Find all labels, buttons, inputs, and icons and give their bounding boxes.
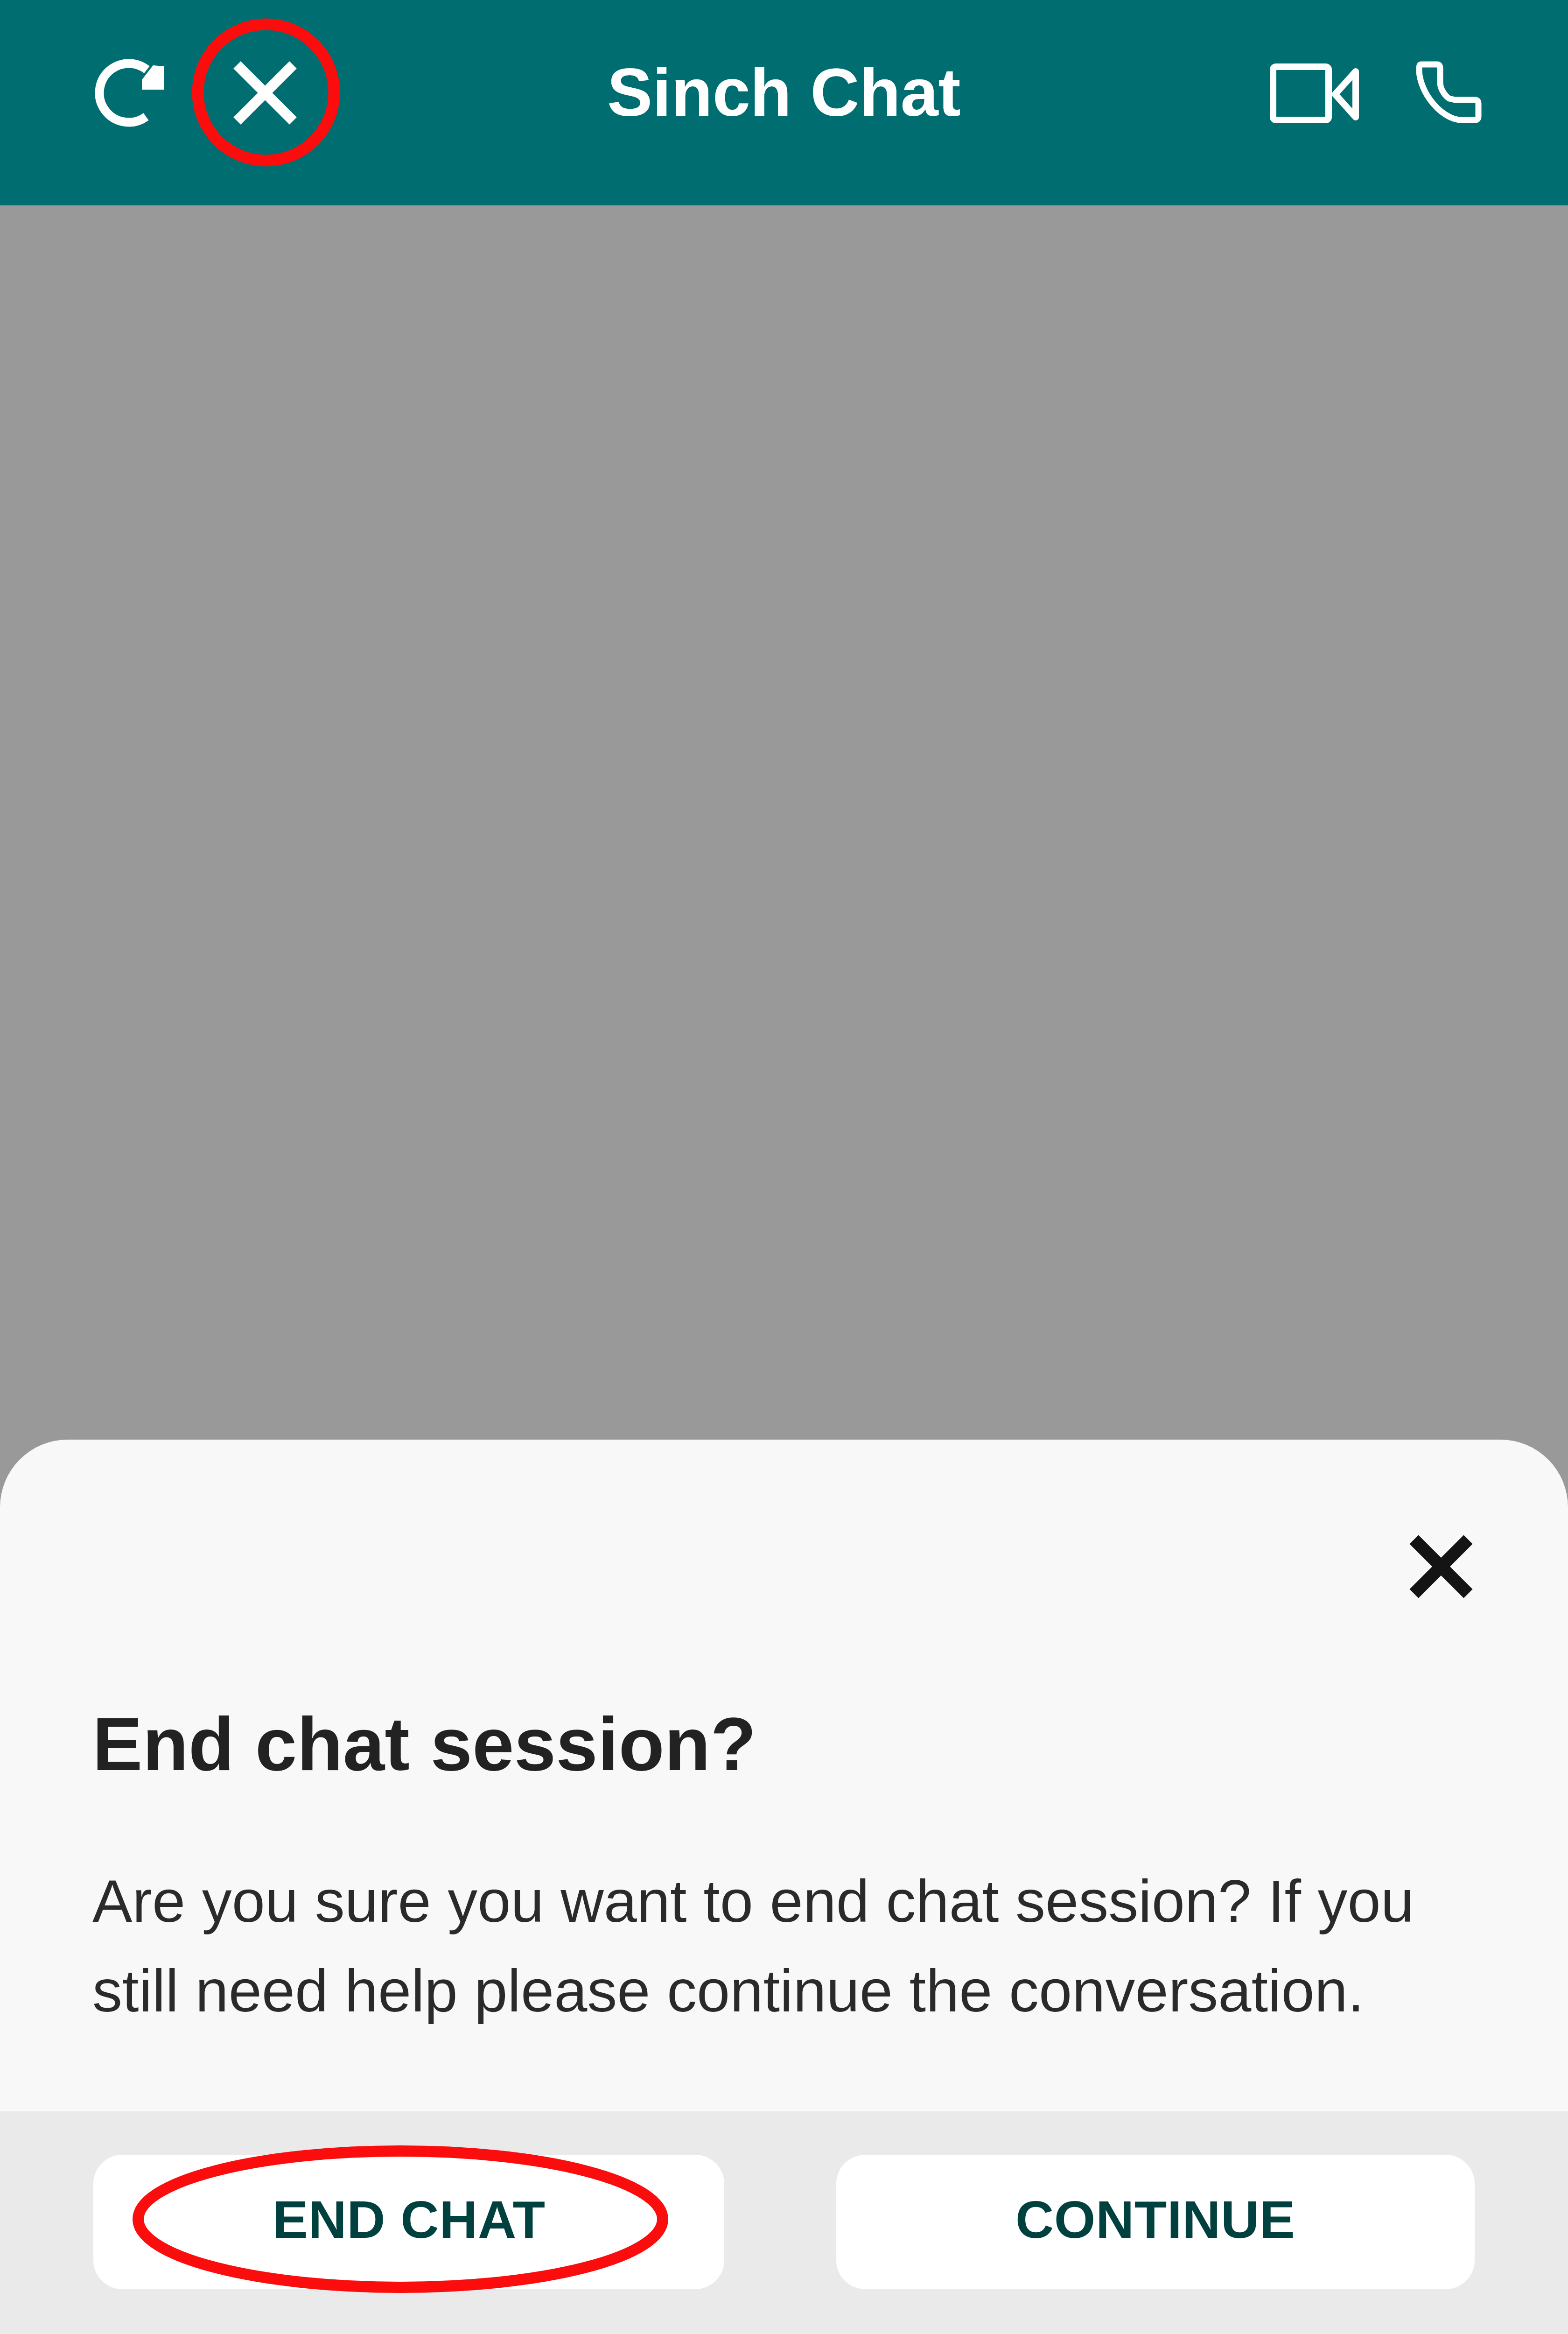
button[interactable]: Close chat <box>218 46 312 140</box>
button[interactable]: END CHAT <box>93 2155 724 2289</box>
staticText: Sinch Chat <box>0 55 1568 130</box>
staticText: END CHAT <box>273 2190 546 2249</box>
staticText: CONTINUE <box>1015 2190 1295 2249</box>
staticText: Are you sure you want to end chat sessio… <box>92 1868 1474 2024</box>
button[interactable]: CONTINUE <box>836 2155 1475 2289</box>
button[interactable]: Voice call <box>1415 61 1483 127</box>
button[interactable]: Refresh <box>82 46 175 140</box>
button[interactable]: Video call <box>1265 59 1363 128</box>
button[interactable]: Close <box>1394 1520 1488 1613</box>
staticText: End chat session? <box>92 1702 756 1786</box>
